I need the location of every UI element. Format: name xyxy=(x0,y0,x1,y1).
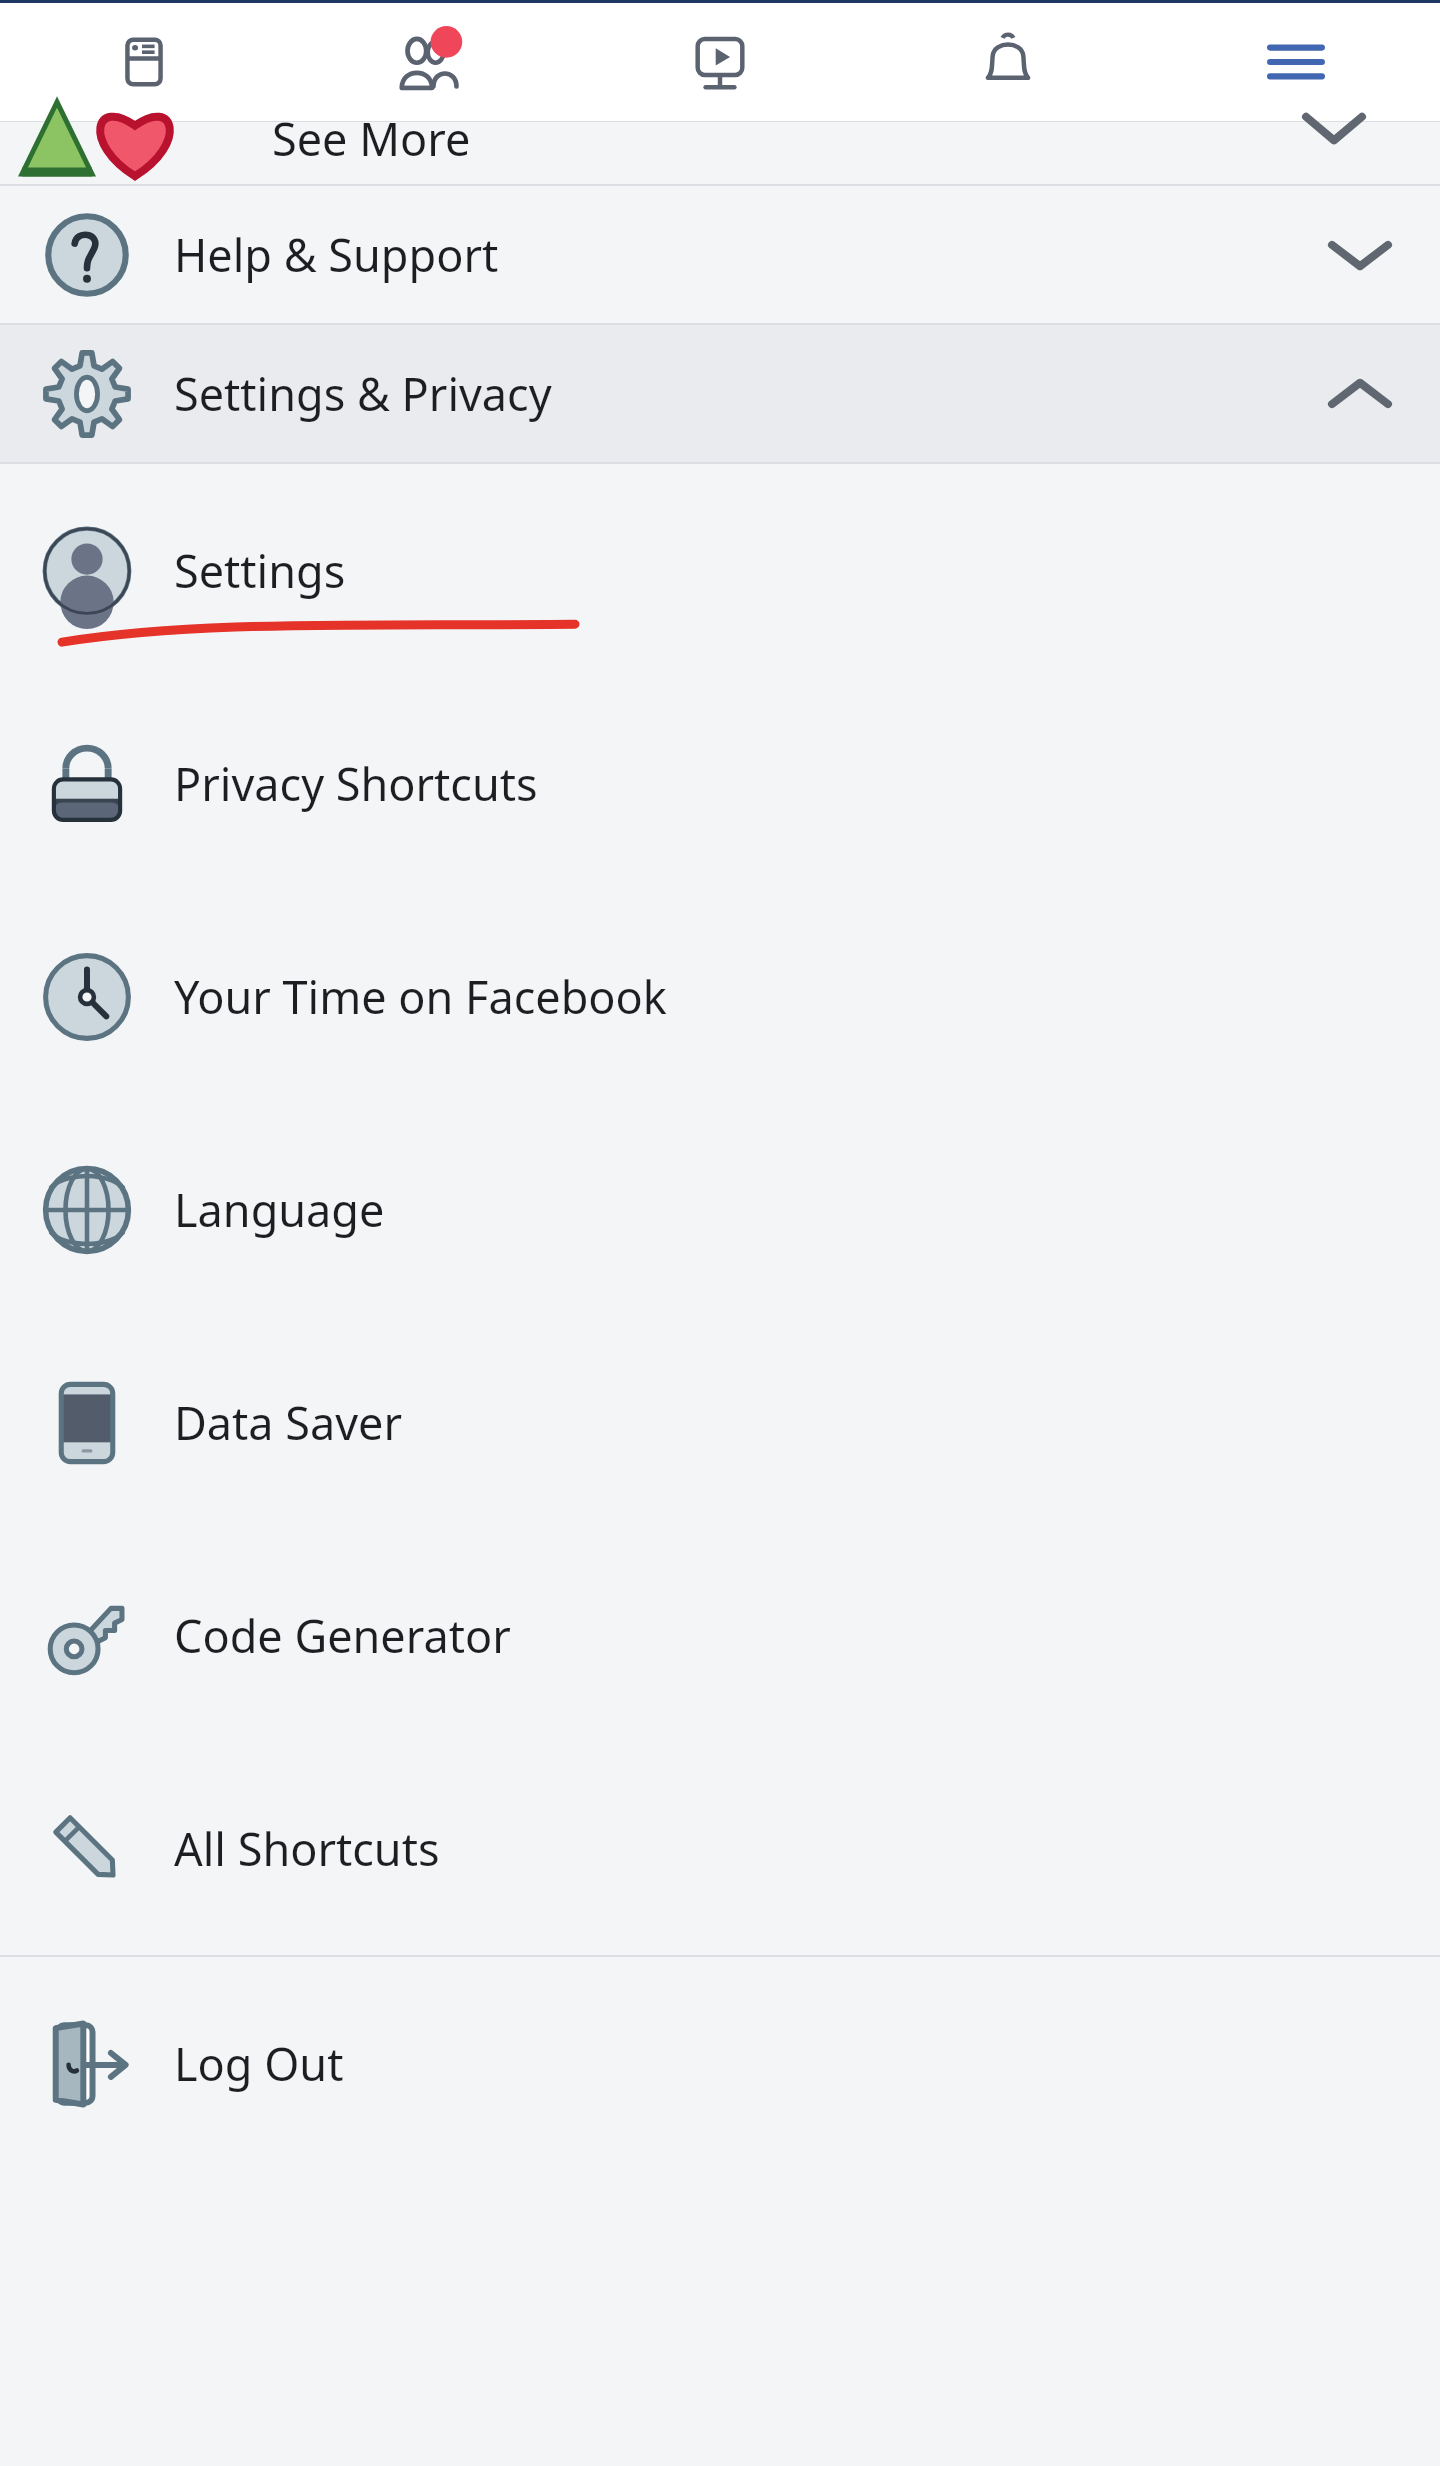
button[interactable]: Settings & Privacy xyxy=(0,325,1440,462)
staticText: Your Time on Facebook xyxy=(174,966,667,1027)
button[interactable]: Code Generator xyxy=(0,1529,1440,1742)
staticText: Log Out xyxy=(174,2033,344,2094)
button[interactable]: News Feed xyxy=(0,3,288,121)
staticText: See More xyxy=(272,108,471,169)
staticText: Language xyxy=(174,1179,385,1240)
staticText: All Shortcuts xyxy=(174,1818,440,1879)
button[interactable]: Menu xyxy=(1152,3,1440,121)
button[interactable]: See More xyxy=(0,122,1440,184)
staticText: Help & Support xyxy=(174,224,1280,285)
button[interactable]: Data Saver xyxy=(0,1316,1440,1529)
button[interactable]: Help & Support xyxy=(0,186,1440,323)
staticText: Settings & Privacy xyxy=(174,363,1280,424)
staticText: Data Saver xyxy=(174,1392,403,1453)
button[interactable]: Your Time on Facebook xyxy=(0,890,1440,1103)
staticText: Privacy Shortcuts xyxy=(174,753,538,814)
staticText: Code Generator xyxy=(174,1605,511,1666)
button[interactable]: Watch xyxy=(576,3,864,121)
button[interactable]: Privacy Shortcuts xyxy=(0,677,1440,890)
staticText: Settings xyxy=(174,540,346,601)
button[interactable]: Settings xyxy=(0,464,1440,677)
button[interactable]: Notifications xyxy=(864,3,1152,121)
button[interactable]: Friend requests xyxy=(288,3,576,121)
button[interactable]: Log Out xyxy=(0,1957,1440,2170)
button[interactable]: All Shortcuts xyxy=(0,1742,1440,1955)
button[interactable]: Language xyxy=(0,1103,1440,1316)
